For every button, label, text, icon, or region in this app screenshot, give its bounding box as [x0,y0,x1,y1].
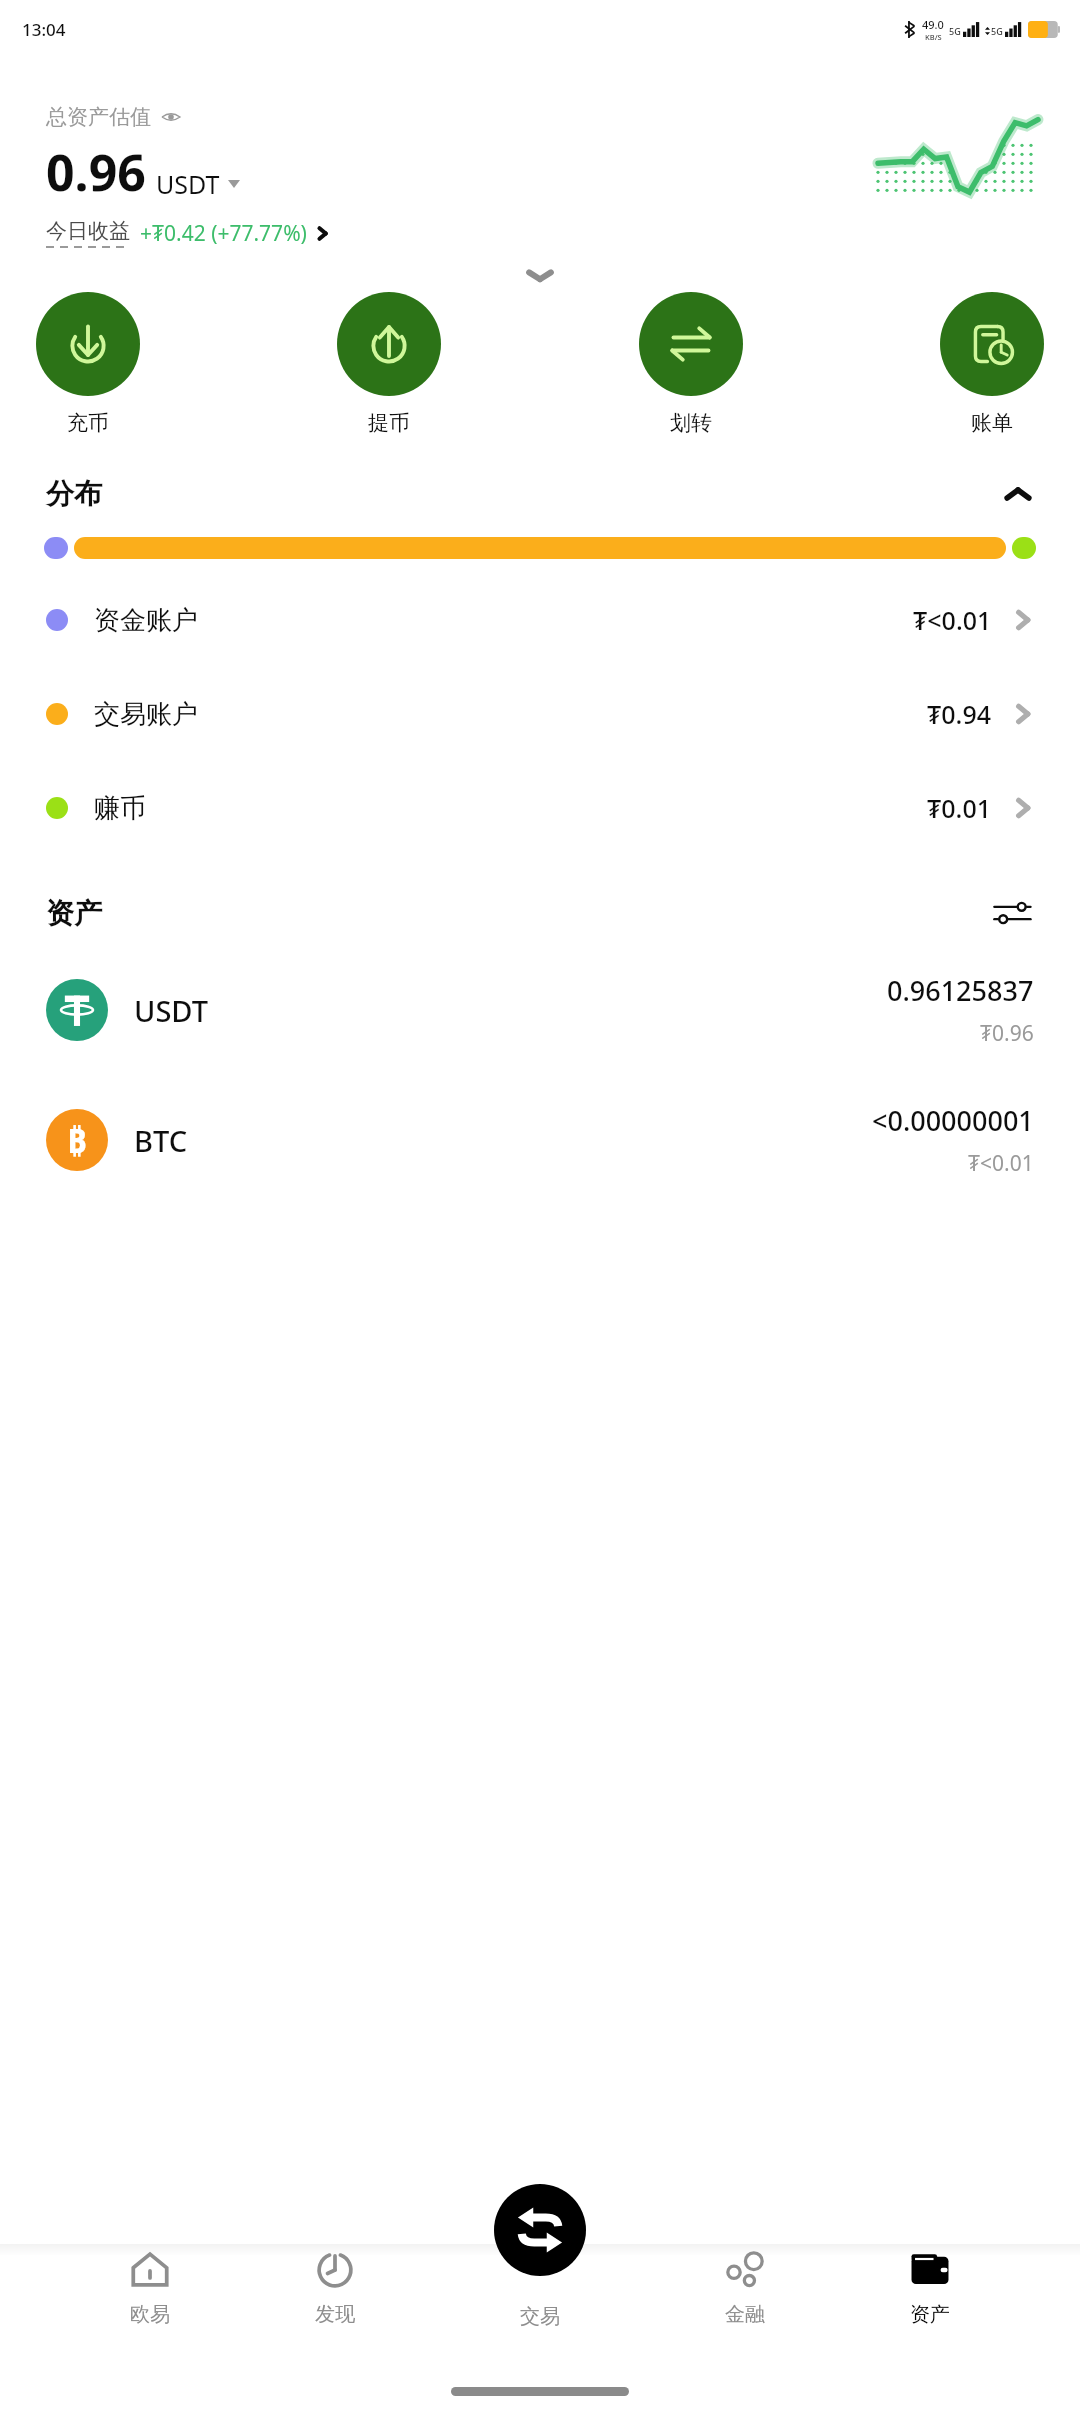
other: Collapse distribution [1002,484,1034,504]
staticText: 交易账户 [94,698,198,731]
staticText: 发现 [315,2302,355,2327]
staticText: 交易 [520,2304,560,2329]
staticText: 今日收益 [46,218,130,244]
button[interactable]: 欧易 [114,2248,186,2327]
staticText: 账单 [971,410,1013,436]
staticText: ₮0.01 [927,791,992,825]
button[interactable]: 赚币 [0,761,1080,855]
staticText: 金融 [725,2302,765,2327]
button[interactable]: USDT [156,167,240,201]
staticText: 资产 [910,2302,950,2327]
button[interactable]: 资金账户 [0,573,1080,667]
staticText: ₮<0.01 [968,1149,1034,1178]
button[interactable]: 金融 [709,2248,781,2327]
staticText: ₿ [67,1117,87,1163]
button[interactable]: 交易账户 [0,667,1080,761]
staticText: 总资产估值 [46,104,151,130]
button[interactable]: 今日收益 [46,218,330,248]
button[interactable]: 账单 [940,292,1044,436]
button[interactable]: 提币 [337,292,441,436]
button[interactable]: USDT [0,945,1080,1075]
button[interactable]: 资产 [894,2248,966,2327]
staticText: 5G [949,25,961,37]
staticText: <0.00000001 [872,1102,1034,1139]
button[interactable]: Collapse [523,266,557,286]
button[interactable]: ₿ [0,1075,1080,1205]
staticText: 充币 [67,410,109,436]
staticText: ₮<0.01 [913,603,992,637]
button[interactable]: 充币 [36,292,140,436]
button[interactable]: 发现 [299,2248,371,2327]
button[interactable]: Filter assets [990,891,1034,935]
staticText: 欧易 [130,2302,170,2327]
staticText: 提币 [368,410,410,436]
staticText: 赚币 [94,792,146,825]
staticText: 分布 [46,476,102,511]
staticText: USDT [134,991,208,1030]
button[interactable]: 交易 Trade [494,2184,586,2276]
button[interactable]: 划转 [639,292,743,436]
staticText: 0.96125837 [887,972,1034,1009]
staticText: ₮0.96 [980,1019,1034,1048]
staticText: 49.0 [922,17,944,32]
staticText: 0.96 [46,138,146,206]
staticText: 资金账户 [94,604,198,637]
staticText: USDT [156,167,220,201]
staticText: KB/S [925,32,942,42]
button[interactable]: 总资产估值 [46,104,181,130]
staticText: BTC [134,1121,188,1160]
button[interactable]: 分布 [0,476,1080,511]
staticText: ₮0.94 [927,697,992,731]
staticText: 资产 [46,896,102,931]
staticText: 5G [991,25,1003,37]
staticText: 划转 [670,410,712,436]
staticText: 13:04 [22,18,66,41]
staticText: +₮0.42 (+77.77%) [140,219,307,248]
